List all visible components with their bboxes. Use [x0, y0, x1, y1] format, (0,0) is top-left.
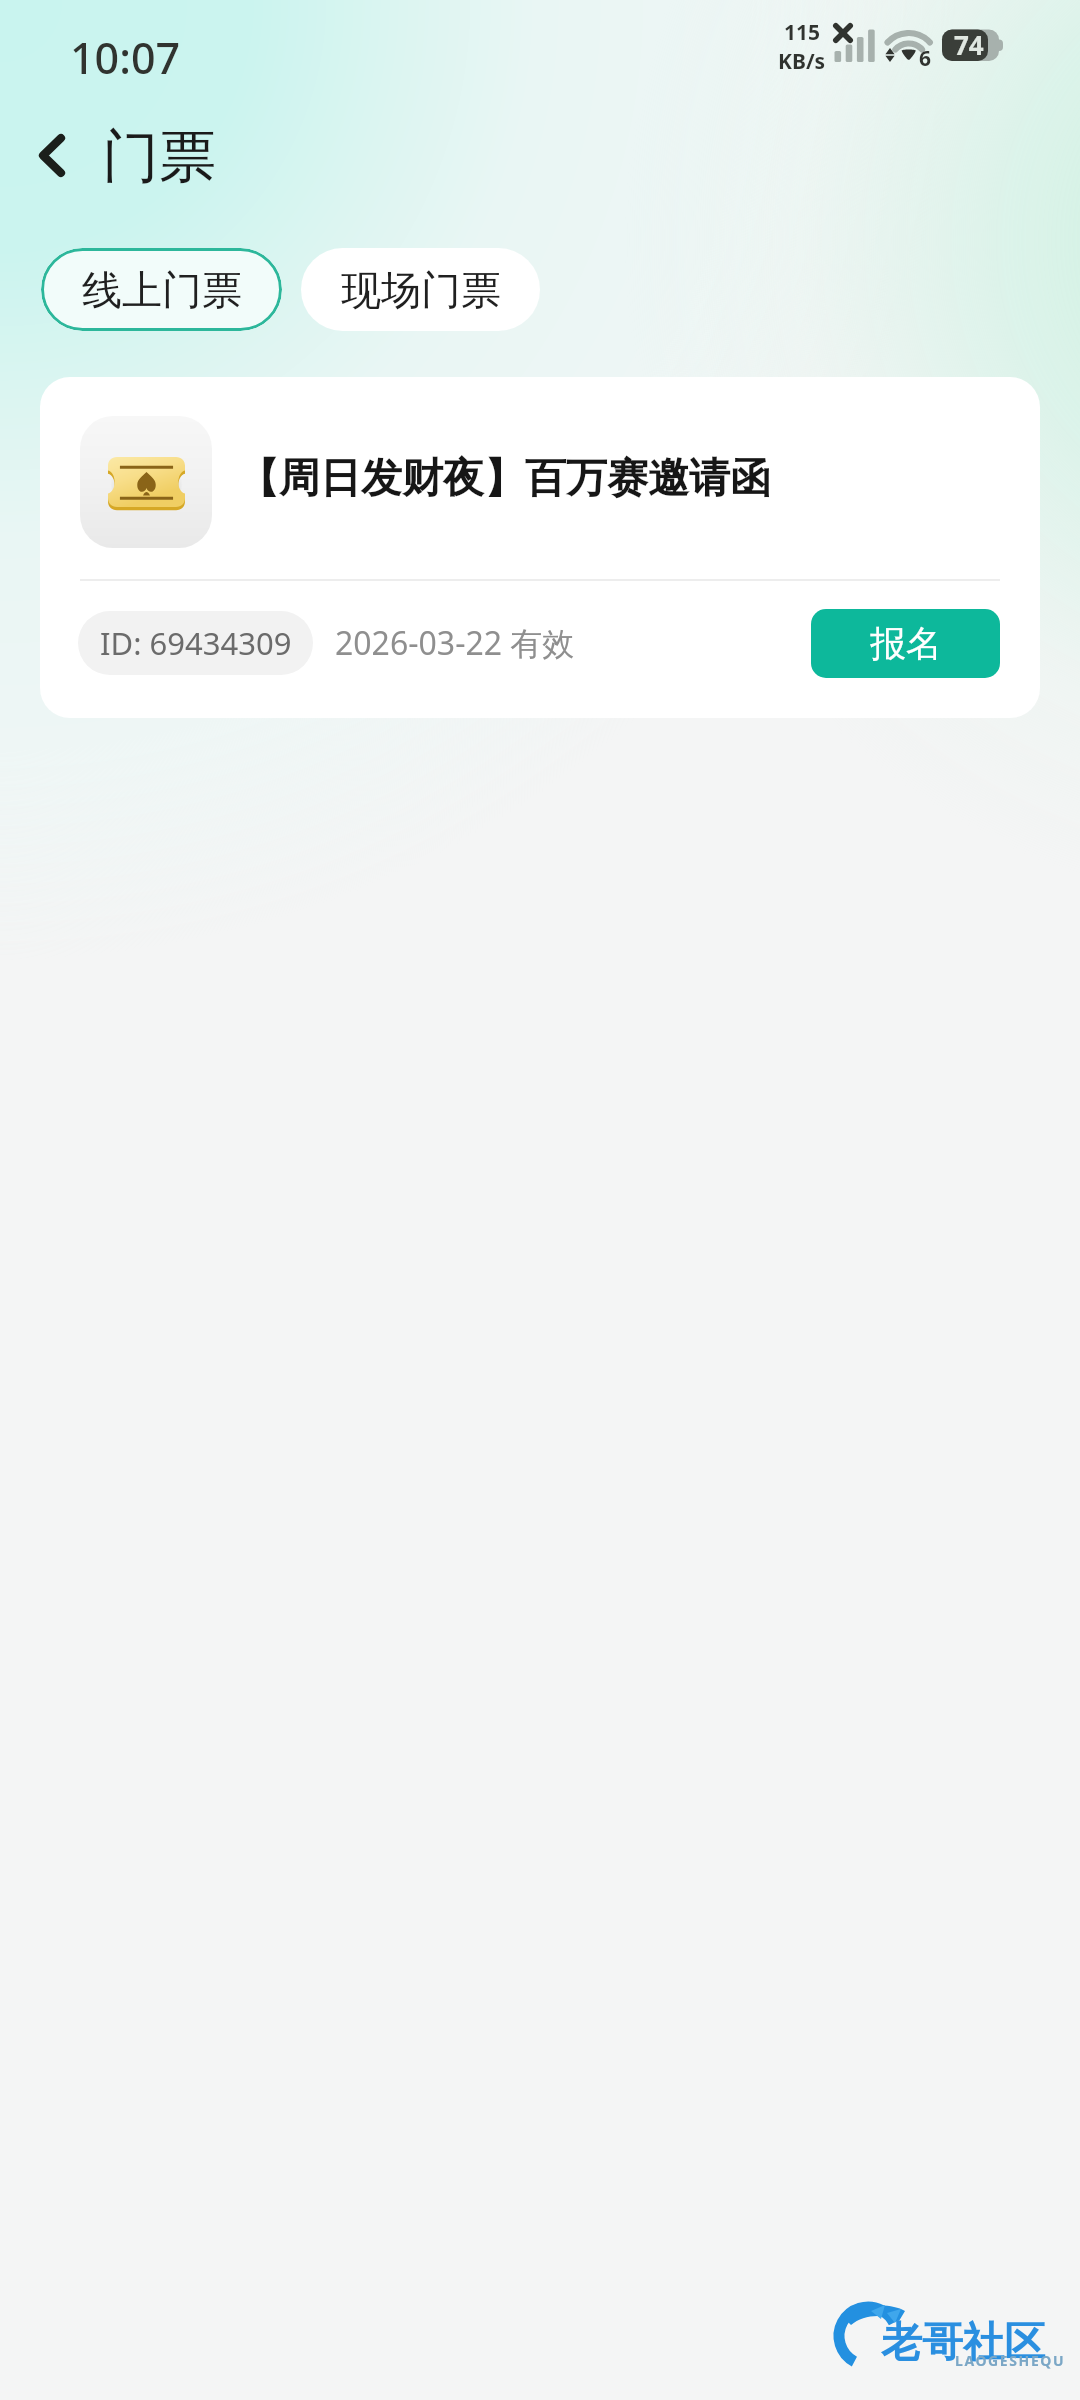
staticText: 6: [919, 44, 932, 73]
staticText: 2026-03-22 有效: [335, 621, 575, 665]
staticText: 74: [954, 27, 984, 62]
staticText: LAOGESHEQU: [955, 2351, 1066, 2370]
staticText: KB/s: [778, 47, 826, 76]
button[interactable]: 线上门票: [41, 248, 282, 331]
button[interactable]: 现场门票: [301, 248, 540, 331]
button[interactable]: 报名: [811, 609, 1000, 678]
staticText: ID: 69434309: [100, 622, 292, 664]
staticText: 115: [784, 18, 821, 47]
staticText: 线上门票: [82, 265, 242, 315]
staticText: 报名: [870, 621, 942, 666]
staticText: 门票: [102, 121, 216, 193]
staticText: 老哥社区: [881, 2317, 1045, 2369]
staticText: 现场门票: [341, 265, 501, 315]
button[interactable]: Back: [25, 124, 89, 188]
staticText: 【周日发财夜】百万赛邀请函: [238, 453, 771, 505]
staticText: 10:07: [70, 28, 181, 87]
button[interactable]: 【周日发财夜】百万赛邀请函: [40, 377, 1040, 718]
